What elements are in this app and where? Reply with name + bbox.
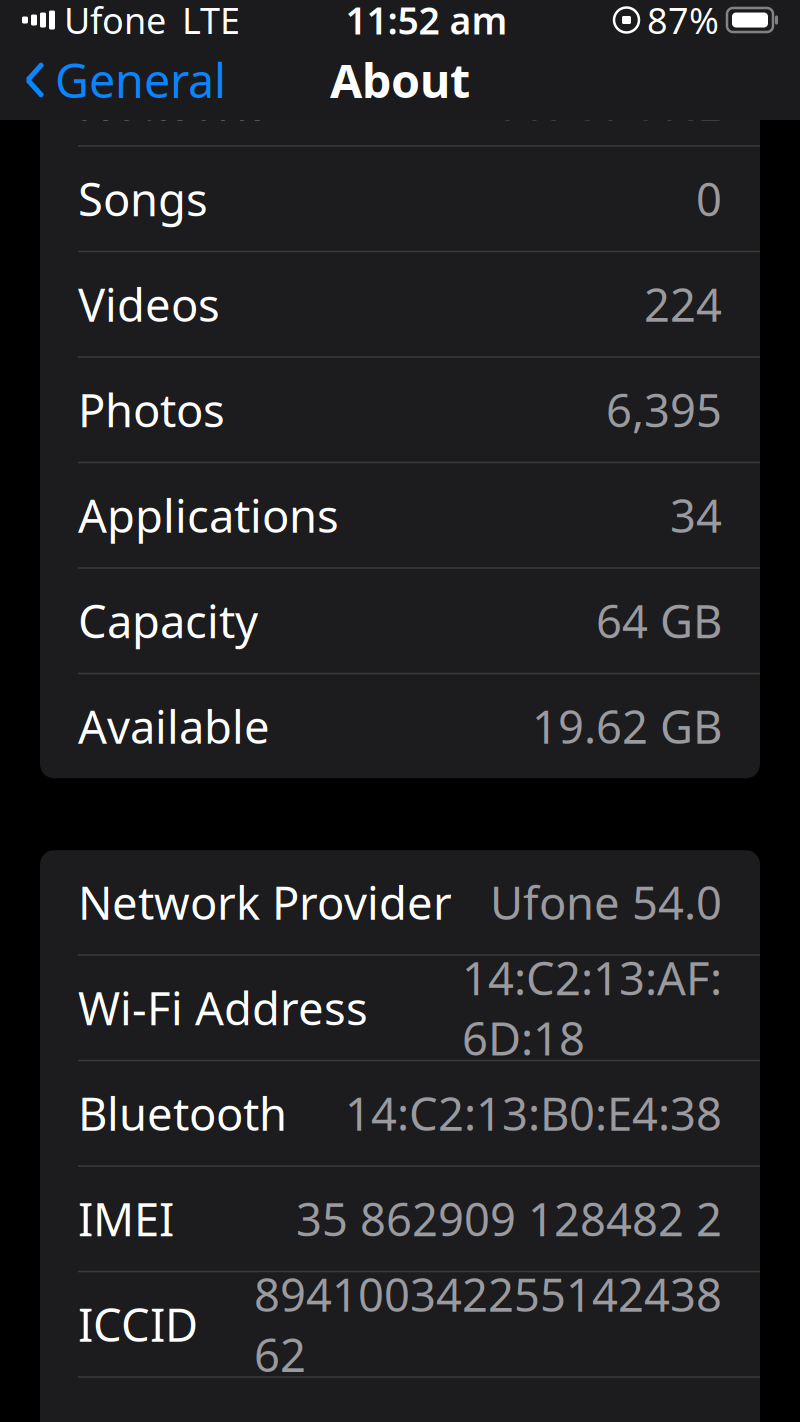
staticText: 64 GB (596, 591, 722, 651)
staticText: 11:52 am (345, 0, 507, 45)
button[interactable]: ICCID (40, 1272, 760, 1376)
button[interactable]: IMEI (40, 1167, 760, 1271)
button[interactable]: General (0, 37, 226, 123)
staticText: 89410034225514243862 (254, 1264, 722, 1384)
staticText: General (55, 49, 226, 111)
button[interactable]: Capacity (40, 569, 760, 673)
staticText: Ufone 54.0 (490, 872, 722, 932)
staticText: 87% (647, 0, 719, 44)
staticText: IMEI (78, 1189, 174, 1249)
staticText: Songs (78, 169, 208, 229)
button[interactable]: Photos (40, 358, 760, 462)
staticText: Available (78, 696, 270, 756)
staticText: 0 (696, 169, 722, 229)
staticText: LTE (182, 0, 240, 44)
staticText: ICCID (78, 1294, 198, 1354)
staticText: Photos (78, 380, 225, 440)
staticText: 35 862909 128482 2 (296, 1189, 722, 1249)
button[interactable]: Network Provider (40, 850, 760, 954)
staticText: Capacity (78, 591, 258, 651)
staticText: Network (78, 73, 260, 133)
staticText: Network Provider (78, 872, 452, 932)
staticText: 34 (670, 485, 722, 545)
button[interactable]: Network (40, 60, 760, 145)
staticText: 19.62 GB (532, 696, 722, 756)
staticText: Videos (78, 274, 220, 334)
button[interactable]: Applications (40, 463, 760, 567)
staticText: Bluetooth (78, 1083, 287, 1143)
staticText: Applications (78, 485, 339, 545)
button[interactable]: Songs (40, 147, 760, 251)
staticText: Wi-Fi Address (78, 978, 368, 1038)
staticText: 14:C2:13:AF:6D:18 (462, 947, 722, 1068)
button[interactable]: Bluetooth (40, 1061, 760, 1165)
staticText: Ufone (64, 0, 166, 44)
staticText: 14:C2:13:B0:E4:38 (345, 1083, 722, 1143)
staticText: 6,395 (606, 380, 722, 440)
staticText: 224 (644, 274, 722, 334)
button[interactable]: Available (40, 674, 760, 778)
button[interactable]: Wi-Fi Address (40, 956, 760, 1060)
button[interactable]: Videos (40, 252, 760, 356)
staticText: About (330, 49, 470, 111)
